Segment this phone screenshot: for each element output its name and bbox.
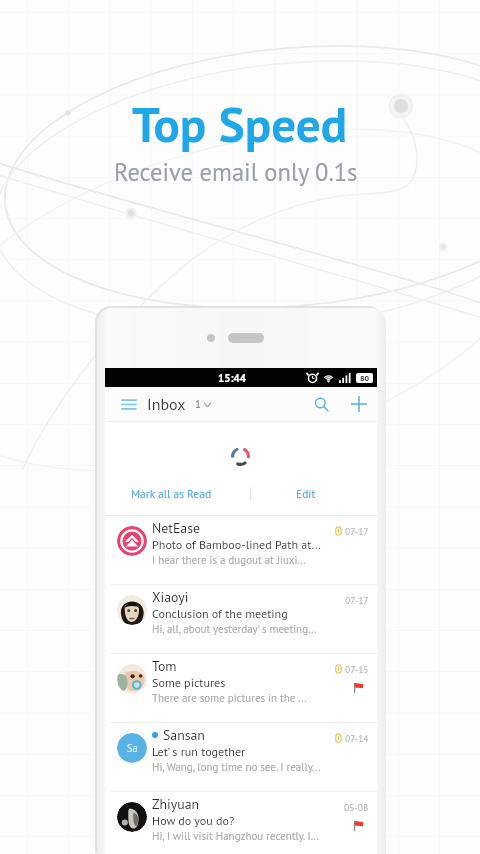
- staticText: Xiaoyi: [152, 588, 189, 606]
- button[interactable]: Search: [309, 392, 333, 416]
- staticText: How do you do?: [152, 813, 235, 829]
- staticText: NetEase: [152, 519, 201, 537]
- button[interactable]: Zhiyuan: [105, 792, 377, 854]
- staticText: 1: [195, 397, 201, 411]
- button[interactable]: Menu: [119, 394, 139, 414]
- button[interactable]: Compose: [347, 392, 371, 416]
- button[interactable]: Xiaoyi: [105, 585, 377, 654]
- staticText: 07-17: [345, 594, 369, 606]
- button[interactable]: NetEase: [105, 516, 377, 585]
- staticText: I hear there is a dugout at Jiuxi...: [152, 553, 306, 567]
- staticText: Receive email only 0.1s: [114, 156, 358, 188]
- button[interactable]: Mark all as Read: [105, 478, 250, 509]
- staticText: 15:44: [218, 371, 246, 385]
- staticText: There are some pictures in the ...: [152, 691, 307, 705]
- staticText: 07-14: [345, 732, 369, 744]
- staticText: Some pictures: [152, 675, 226, 691]
- staticText: 80: [360, 373, 370, 383]
- staticText: Edit: [296, 486, 316, 501]
- staticText: Zhiyuan: [152, 795, 200, 813]
- staticText: Inbox: [147, 394, 186, 415]
- staticText: Mark all as Read: [131, 486, 212, 501]
- staticText: Sa: [127, 741, 138, 755]
- staticText: 07-17: [345, 525, 369, 537]
- staticText: 05-08: [344, 801, 369, 813]
- staticText: 07-15: [345, 663, 369, 675]
- staticText: Tom: [152, 657, 177, 675]
- staticText: Hi, Wang, long time no see. I really...: [152, 760, 321, 774]
- staticText: Hi, I will visit Hangzhou recently. I...: [152, 829, 320, 843]
- staticText: Let’ s run together: [152, 744, 246, 760]
- button[interactable]: Edit: [251, 478, 377, 509]
- staticText: Conclusion of the meeting: [152, 606, 288, 622]
- button[interactable]: Sa: [105, 723, 377, 792]
- button[interactable]: Tom: [105, 654, 377, 723]
- staticText: Top Speed: [132, 92, 348, 155]
- staticText: Photo of Bamboo-lined Path at...: [152, 537, 321, 553]
- staticText: Hi, all, about yesterday’ s meeting...: [152, 622, 317, 636]
- staticText: Sansan: [163, 726, 205, 744]
